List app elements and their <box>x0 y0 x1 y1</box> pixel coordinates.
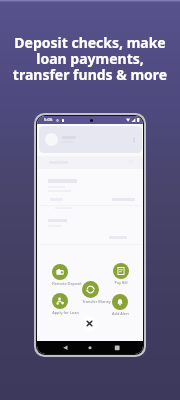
button[interactable]: Add Alert <box>112 294 128 310</box>
staticText: Apply for Loan <box>52 310 79 315</box>
button[interactable]: Close menu <box>82 316 97 331</box>
button[interactable] <box>39 126 142 153</box>
staticText: 5:06 <box>44 117 53 123</box>
staticText: Remote Deposit <box>52 281 82 286</box>
staticText: Transfer Money <box>82 299 111 304</box>
button[interactable]: Transfer Money <box>82 281 99 298</box>
button[interactable]: Remote Deposit <box>52 264 68 280</box>
staticText: Pay Bill <box>114 280 128 285</box>
staticText: Deposit checks, make loan payments, tran… <box>0 33 180 84</box>
button[interactable]: Pay Bill <box>113 263 129 279</box>
button[interactable]: Apply for Loan <box>52 293 68 309</box>
staticText: Add Alert <box>112 311 129 316</box>
